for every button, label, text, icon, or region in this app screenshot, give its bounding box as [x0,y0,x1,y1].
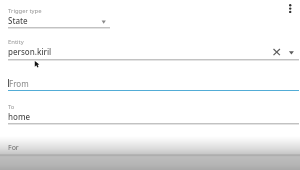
staticText: Entity [8,38,24,46]
button[interactable]: Clear [268,44,285,61]
staticText: From [9,78,29,89]
button[interactable]: Show entity list [285,46,298,59]
staticText: home [8,111,31,122]
staticText: To [8,103,15,111]
button[interactable]: Trigger type [8,7,111,27]
button[interactable]: To [8,103,263,123]
button[interactable]: For [8,143,299,153]
button[interactable]: More options [282,0,299,18]
staticText: For [8,143,19,153]
staticText: Trigger type [8,7,42,15]
button[interactable]: From [8,78,299,89]
staticText: person.kiril [8,46,52,57]
staticText: State [8,15,28,26]
button[interactable]: Entity [8,38,263,58]
